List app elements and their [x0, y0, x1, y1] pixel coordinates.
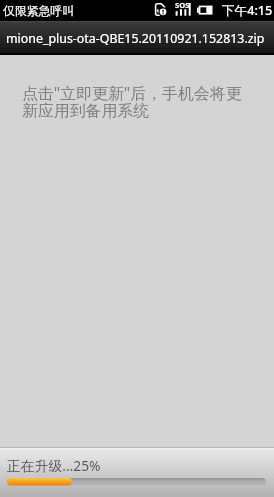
staticText: mione_plus-ota-QBE15.20110921.152813.zip	[6, 30, 265, 47]
staticText: 正在升级...25%	[7, 456, 101, 475]
button[interactable]: mione_plus-ota-QBE15.20110921.152813.zip	[0, 21, 274, 55]
staticText: SOS	[175, 0, 190, 10]
staticText: 仅限紧急呼叫	[3, 4, 75, 19]
staticText: 下午4:15	[222, 2, 273, 19]
staticText: 点击"立即更新"后，手机会将更 新应用到备用系统	[22, 82, 242, 121]
